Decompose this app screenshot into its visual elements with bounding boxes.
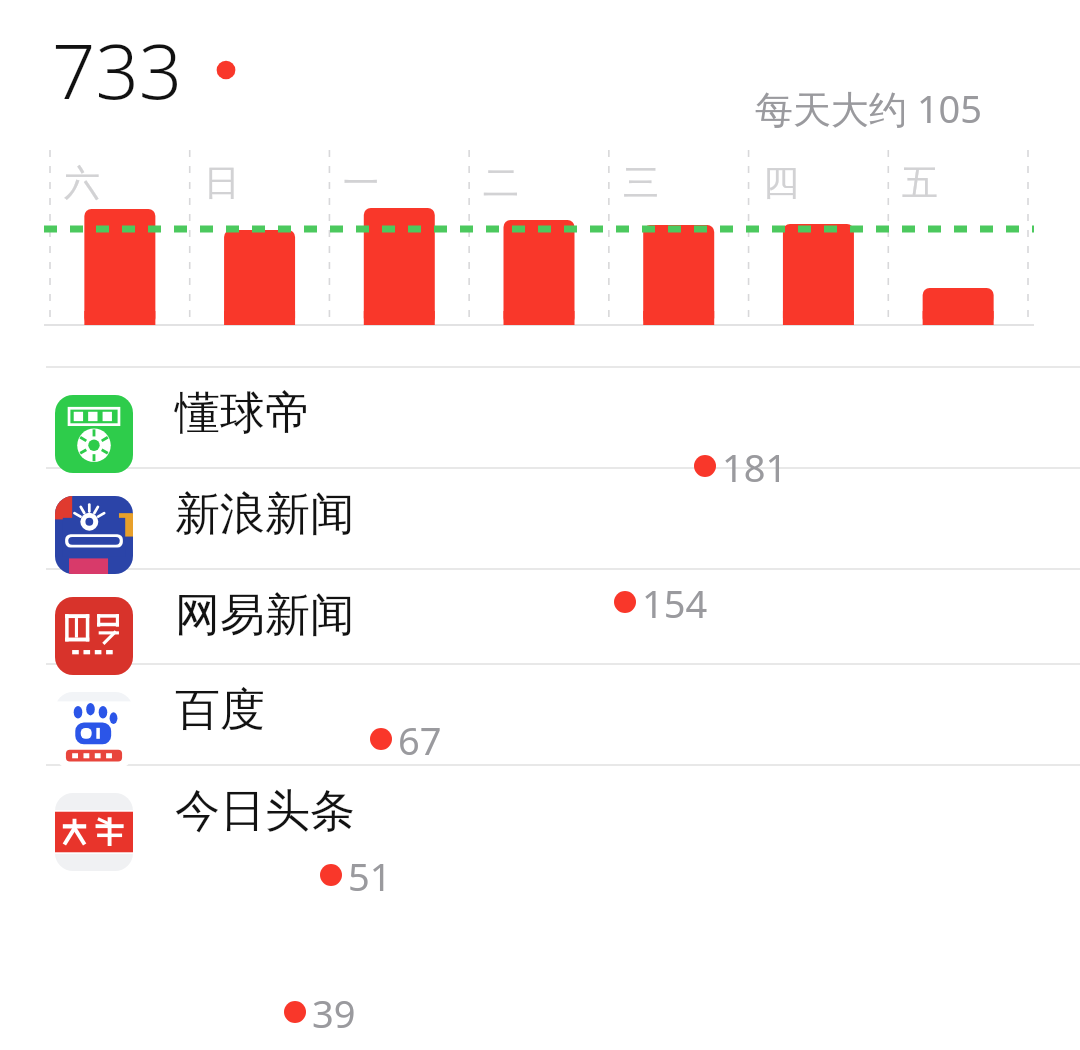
staticText: 一 [343, 160, 379, 205]
staticText: 三 [623, 160, 659, 205]
button[interactable]: 懂球帝 [0, 366, 1080, 467]
staticText: 日 [204, 160, 240, 205]
staticText: 二 [483, 160, 519, 205]
staticText: 154 [642, 577, 708, 629]
staticText: 五 [902, 160, 938, 205]
button[interactable]: 网易新闻 [0, 568, 1080, 669]
staticText: 四 [763, 160, 799, 205]
staticText: 懂球帝 [175, 385, 310, 442]
staticText: 网易新闻 [175, 587, 355, 644]
staticText: 六 [64, 160, 100, 205]
staticText: 每天大约 105 [755, 82, 983, 134]
staticText: 51 [348, 850, 392, 902]
staticText: 733 [52, 18, 183, 122]
staticText: 新浪新闻 [175, 486, 355, 543]
staticText: 181 [722, 441, 788, 493]
staticText: 今日头条 [175, 783, 355, 840]
button[interactable]: 新浪新闻 [0, 467, 1080, 568]
staticText: 百度 [175, 682, 265, 739]
button[interactable]: 百度 [0, 663, 1080, 764]
button[interactable]: 今日头条 [0, 764, 1080, 865]
button[interactable]: Weekly usage chart [0, 148, 1080, 333]
staticText: 39 [312, 987, 356, 1039]
staticText: 67 [398, 714, 442, 766]
